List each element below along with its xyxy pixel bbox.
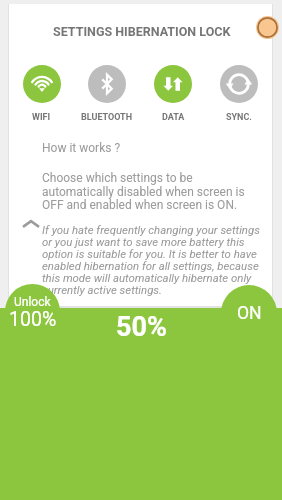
button[interactable]: WIFI xyxy=(9,65,74,123)
staticText: 100% xyxy=(9,308,57,331)
button[interactable]: Unlock xyxy=(5,284,60,339)
button[interactable]: Collapse xyxy=(15,208,47,240)
staticText: ON xyxy=(237,303,262,324)
other: WIFI xyxy=(23,65,61,103)
staticText: SETTINGS HIBERNATION LOCK xyxy=(53,24,231,39)
other: DATA xyxy=(154,65,192,103)
staticText: If you hate frequently changing your set… xyxy=(42,223,266,296)
button[interactable]: BLUETOOTH xyxy=(74,65,140,123)
staticText: Choose which settings to be automaticall… xyxy=(42,171,245,211)
button[interactable]: DATA xyxy=(140,65,206,123)
staticText: How it works ? xyxy=(42,141,121,155)
button[interactable]: ON xyxy=(221,285,277,341)
button[interactable]: SETTINGS HIBERNATION LOCK xyxy=(10,23,273,39)
staticText: DATA xyxy=(162,112,185,123)
other: SYNC. xyxy=(220,65,258,103)
staticText: WIFI xyxy=(32,112,51,123)
staticText: BLUETOOTH xyxy=(81,112,133,123)
staticText: Unlock xyxy=(14,295,51,309)
staticText: 50% xyxy=(116,311,167,343)
button[interactable]: SYNC. xyxy=(206,65,272,123)
other: BLUETOOTH xyxy=(88,65,126,103)
button[interactable]: Menu xyxy=(256,16,279,39)
staticText: SYNC. xyxy=(226,112,252,123)
